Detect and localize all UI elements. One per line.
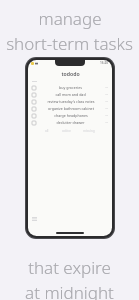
button[interactable]: call mom and dad bbox=[28, 91, 112, 98]
button[interactable]: buy groceries bbox=[28, 84, 112, 91]
staticText: call mom and dad bbox=[55, 92, 86, 97]
staticText: tododo bbox=[61, 70, 80, 77]
staticText: active bbox=[62, 129, 71, 133]
staticText: buy groceries bbox=[59, 85, 82, 90]
staticText: manage bbox=[38, 7, 102, 30]
staticText: charge headphones bbox=[54, 113, 88, 118]
button[interactable]: missing bbox=[82, 128, 96, 134]
staticText: that expire bbox=[28, 256, 111, 279]
staticText: declutter drawer bbox=[56, 120, 85, 125]
button[interactable]: charge headphones bbox=[28, 112, 112, 119]
staticText: 16:20 bbox=[100, 61, 109, 65]
staticText: all bbox=[45, 129, 49, 133]
staticText: review tuesday's class notes bbox=[47, 99, 95, 104]
button[interactable]: declutter drawer bbox=[28, 119, 112, 126]
button[interactable]: all bbox=[44, 128, 50, 134]
button[interactable]: Menu bbox=[31, 215, 38, 222]
staticText: organize bathroom cabinet bbox=[48, 106, 94, 111]
staticText: missing bbox=[83, 129, 95, 133]
staticText: short-term tasks bbox=[6, 32, 133, 55]
button[interactable]: active bbox=[61, 128, 72, 134]
button[interactable]: review tuesday's class notes bbox=[28, 98, 112, 105]
button[interactable]: organize bathroom cabinet bbox=[28, 105, 112, 112]
staticText: at midnight bbox=[25, 281, 114, 300]
